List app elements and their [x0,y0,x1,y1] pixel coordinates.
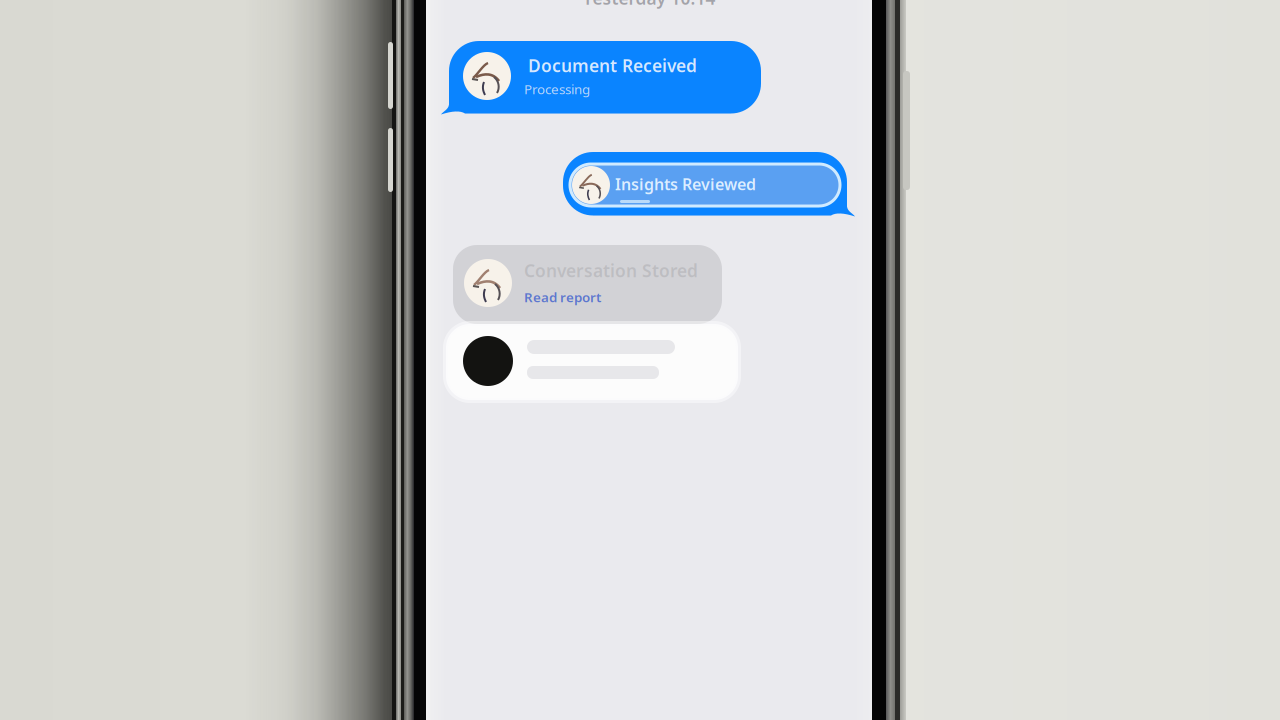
staticText: Conversation Stored [524,259,698,282]
staticText: Read report [524,288,601,306]
staticText: Yesterday 10:14 [582,0,715,9]
button[interactable]: Conversation Stored [453,245,722,324]
button[interactable] [448,326,736,398]
staticText: Insights Reviewed [615,173,756,195]
staticText: Processing [524,80,590,98]
button[interactable]: Document Received [441,41,761,115]
button[interactable]: Insights Reviewed [563,152,855,217]
staticText: Document Received [528,54,697,77]
